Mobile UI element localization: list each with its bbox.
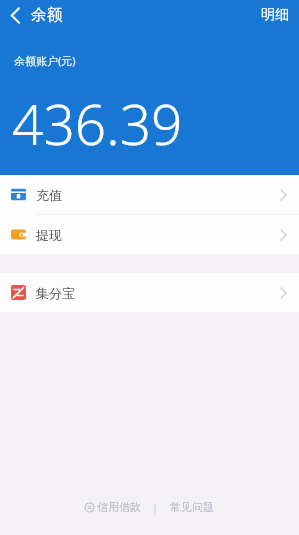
button[interactable]: 提现 bbox=[0, 215, 299, 254]
button[interactable]: 余额 bbox=[0, 5, 73, 25]
staticText: 集分宝 bbox=[36, 285, 280, 301]
button[interactable]: 充值 bbox=[0, 175, 299, 214]
staticText: 余额 bbox=[31, 5, 63, 25]
other: 充值 bbox=[11, 187, 26, 202]
staticText: | bbox=[152, 500, 159, 515]
staticText: 充值 bbox=[36, 187, 280, 203]
other: 集分宝 bbox=[11, 285, 26, 300]
button[interactable]: 常见问题 bbox=[167, 497, 217, 517]
staticText: 余额账户(元) bbox=[14, 53, 76, 68]
staticText: 常见问题 bbox=[170, 500, 214, 514]
staticText: 436.39 bbox=[12, 86, 183, 161]
button[interactable]: 信用借款 bbox=[82, 497, 144, 517]
other: 提现 bbox=[11, 227, 26, 242]
button[interactable]: 集分宝 bbox=[0, 273, 299, 312]
staticText: 信用借款 bbox=[97, 500, 141, 514]
staticText: 提现 bbox=[36, 227, 280, 243]
button[interactable]: 明细 bbox=[251, 2, 299, 28]
staticText: 明细 bbox=[261, 6, 289, 24]
